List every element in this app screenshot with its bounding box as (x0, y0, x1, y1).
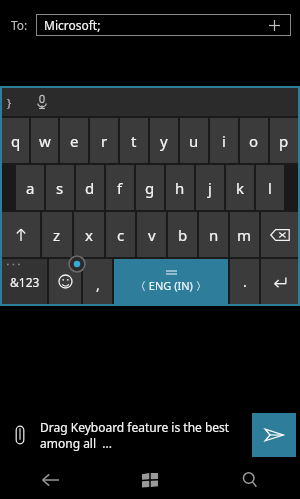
staticText: Microsoft; (44, 17, 101, 33)
button[interactable]: t (120, 118, 148, 163)
button[interactable]: r (90, 118, 118, 163)
staticText: e (70, 131, 79, 151)
button[interactable]: i (210, 118, 238, 163)
button[interactable]: Emoji (49, 259, 81, 304)
button[interactable]: d (76, 165, 104, 210)
staticText: n (209, 225, 219, 245)
button[interactable]: e (60, 118, 88, 163)
button[interactable]: 〈 ENG (IN) 〉 (114, 259, 228, 304)
button[interactable]: Back (0, 461, 100, 499)
button[interactable]: h (166, 165, 194, 210)
staticText: z (53, 225, 61, 245)
button[interactable]: Search (200, 461, 300, 499)
staticText: m (237, 225, 252, 245)
button[interactable]: y (150, 118, 178, 163)
button[interactable]: Attach (0, 409, 40, 461)
button[interactable]: Send (252, 413, 296, 457)
button[interactable] (2, 212, 40, 257)
button[interactable]: g (136, 165, 164, 210)
button[interactable]: Microsoft; (36, 14, 291, 36)
button[interactable]: Backspace (261, 212, 298, 257)
button[interactable]: Enter (261, 259, 298, 304)
staticText: , (96, 275, 100, 294)
staticText: Drag Keyboard feature is the best among … (40, 419, 252, 451)
button[interactable]: &123 (2, 259, 47, 304)
staticText: j (208, 178, 212, 198)
staticText: c (117, 225, 125, 245)
staticText: i (222, 131, 226, 151)
button[interactable]: , (83, 259, 112, 304)
button[interactable]: l (256, 165, 284, 210)
staticText: v (148, 225, 156, 245)
button[interactable]: q (2, 118, 29, 163)
staticText: w (39, 131, 51, 151)
staticText: l (268, 178, 272, 198)
button[interactable]: m (230, 212, 259, 257)
button[interactable]: u (180, 118, 208, 163)
button[interactable]: f (106, 165, 134, 210)
staticText: To: (11, 17, 28, 33)
staticText: p (279, 131, 289, 151)
staticText: b (178, 225, 188, 245)
staticText: x (85, 225, 93, 245)
staticText: o (249, 131, 259, 151)
button[interactable]: j (196, 165, 224, 210)
staticText: g (145, 178, 155, 198)
staticText: s (56, 178, 64, 198)
button[interactable]: n (199, 212, 228, 257)
staticText: 〈 ENG (IN) 〉 (135, 278, 207, 293)
staticText: r (101, 131, 108, 151)
button[interactable]: . (230, 259, 259, 304)
button[interactable]: Voice input (30, 90, 54, 114)
staticText: h (175, 178, 185, 198)
button[interactable]: k (226, 165, 254, 210)
button[interactable]: v (137, 212, 166, 257)
staticText: . (243, 272, 247, 291)
button[interactable]: Start (100, 461, 200, 499)
button[interactable]: x (74, 212, 104, 257)
button[interactable]: b (168, 212, 197, 257)
button[interactable]: Drag Keyboard feature is the best among … (40, 409, 252, 461)
button[interactable]: p (270, 118, 298, 163)
staticText: a (26, 178, 35, 198)
staticText: k (236, 178, 245, 198)
staticText: q (11, 131, 21, 151)
button[interactable]: Move keyboard (68, 255, 86, 273)
button[interactable]: z (42, 212, 72, 257)
button[interactable]: a (16, 165, 44, 210)
staticText: d (85, 178, 95, 198)
button[interactable]: o (240, 118, 268, 163)
button[interactable]: c (106, 212, 135, 257)
staticText: y (160, 131, 168, 151)
staticText: f (117, 178, 123, 198)
button[interactable]: s (46, 165, 74, 210)
staticText: t (131, 131, 137, 151)
staticText: u (189, 131, 199, 151)
button[interactable]: w (31, 118, 58, 163)
staticText: } (7, 95, 12, 110)
staticText: &123 (10, 274, 40, 290)
other: Add recipient (265, 16, 283, 34)
